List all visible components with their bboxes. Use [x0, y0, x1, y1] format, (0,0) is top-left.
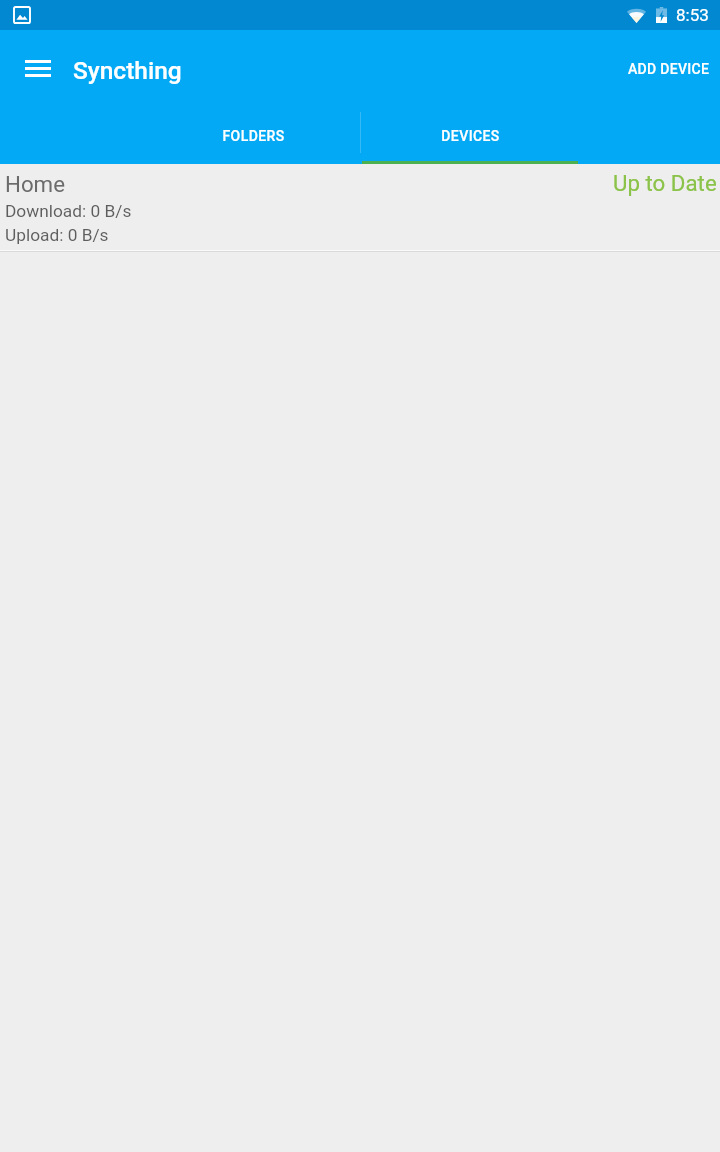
staticText: Syncthing: [73, 56, 182, 85]
staticText: Upload: 0 B/s: [5, 225, 109, 245]
button[interactable]: FOLDERS: [145, 112, 361, 164]
button[interactable]: DEVICES: [362, 112, 578, 164]
staticText: Up to Date: [613, 170, 717, 196]
staticText: Download: 0 B/s: [5, 201, 132, 221]
staticText: ADD DEVICE: [628, 61, 710, 77]
button[interactable]: ADD DEVICE: [616, 30, 720, 112]
staticText: DEVICES: [441, 128, 500, 144]
staticText: FOLDERS: [222, 128, 285, 144]
button[interactable]: Home: [0, 164, 720, 252]
staticText: 8:53: [676, 5, 709, 25]
staticText: Home: [5, 171, 65, 197]
button[interactable]: Open navigation drawer: [0, 27, 73, 109]
